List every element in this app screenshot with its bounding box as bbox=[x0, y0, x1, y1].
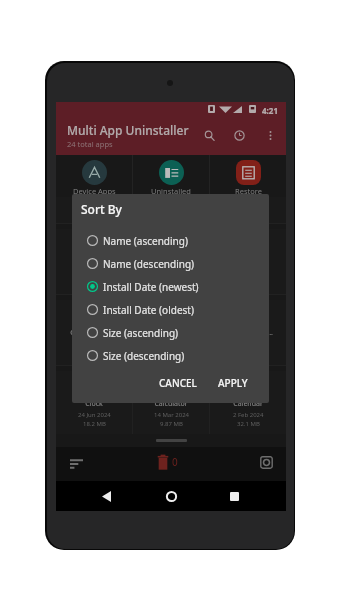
button[interactable]: More options bbox=[260, 125, 280, 145]
staticText: Calculator bbox=[154, 399, 188, 409]
button[interactable]: Device Apps bbox=[56, 155, 132, 197]
button[interactable]: History bbox=[229, 125, 249, 145]
staticText: Install Date (oldest) bbox=[103, 303, 194, 317]
button[interactable]: Chrome bbox=[56, 229, 132, 295]
staticText: Google Optimi... bbox=[144, 328, 198, 338]
staticText: 64.3 MB bbox=[160, 278, 183, 286]
staticText: 212.4 MB bbox=[81, 278, 108, 286]
button[interactable]: Select all bbox=[254, 450, 278, 474]
button[interactable]: Size (ascending) bbox=[72, 321, 269, 344]
staticText: 153.71 MB bbox=[79, 349, 109, 357]
button[interactable]: CANCEL bbox=[153, 372, 203, 394]
staticText: 24 total apps bbox=[67, 139, 113, 149]
staticText: 2 Feb 2024 bbox=[233, 411, 264, 419]
button[interactable]: Calendar bbox=[210, 197, 286, 224]
staticText: Name (ascending) bbox=[103, 234, 188, 248]
staticText: Restore bbox=[235, 186, 262, 196]
button[interactable]: Calculator bbox=[133, 371, 209, 434]
staticText: 18.2 MB bbox=[83, 420, 106, 428]
staticText: Material Icon... bbox=[224, 328, 273, 338]
button[interactable]: Size (descending) bbox=[72, 344, 269, 367]
staticText: 32.1 MB bbox=[237, 420, 260, 428]
staticText: 18.2 MB bbox=[83, 207, 106, 215]
staticText: Install Date (newest) bbox=[103, 280, 199, 294]
button[interactable]: Install Date (oldest) bbox=[72, 298, 269, 321]
button[interactable]: Delete selected bbox=[157, 451, 178, 473]
staticText: CANCEL bbox=[159, 376, 197, 390]
button[interactable]: Search bbox=[199, 125, 219, 145]
staticText: Size (ascending) bbox=[103, 326, 179, 340]
staticText: Uninstalled bbox=[151, 186, 191, 196]
button[interactable]: Sort bbox=[64, 452, 88, 476]
button[interactable]: Clock bbox=[56, 371, 132, 434]
staticText: Sort By bbox=[81, 201, 122, 217]
button[interactable]: Clock bbox=[56, 197, 132, 224]
staticText: 4.17 MB bbox=[160, 349, 183, 357]
button[interactable]: Recents bbox=[222, 484, 246, 508]
button[interactable]: Install Date (newest) bbox=[72, 275, 269, 298]
staticText: Drive bbox=[162, 257, 180, 267]
staticText: Calendar bbox=[233, 399, 263, 409]
staticText: 24 Jun 2024 bbox=[78, 411, 111, 419]
button[interactable]: Drive bbox=[133, 229, 209, 295]
staticText: Device Apps bbox=[73, 186, 116, 196]
button[interactable]: Name (ascending) bbox=[72, 229, 269, 252]
staticText: 4:21 bbox=[262, 105, 278, 116]
button[interactable]: Google Photos bbox=[56, 300, 132, 366]
staticText: 14 Mar 2024 bbox=[154, 411, 189, 419]
staticText: 9.87 MB bbox=[160, 420, 183, 428]
staticText: Google Photos bbox=[70, 328, 119, 338]
button[interactable]: Name (descending) bbox=[72, 252, 269, 275]
button[interactable]: APPLY bbox=[212, 372, 254, 394]
staticText: 0 bbox=[172, 455, 178, 469]
staticText: Multi App Uninstaller bbox=[67, 122, 189, 138]
staticText: Size (descending) bbox=[103, 349, 185, 363]
staticText: APPLY bbox=[218, 376, 248, 390]
button[interactable]: Google Optimi... bbox=[133, 300, 209, 366]
button[interactable]: Home bbox=[159, 484, 183, 508]
staticText: Name (descending) bbox=[103, 257, 195, 271]
button[interactable]: Restore bbox=[210, 155, 286, 197]
button[interactable]: Material Icon... bbox=[210, 300, 286, 366]
staticText: Clock bbox=[85, 399, 103, 409]
button[interactable]: Uninstalled bbox=[133, 155, 209, 197]
button[interactable]: Back bbox=[94, 484, 118, 508]
staticText: 24 Jun 2024 bbox=[78, 198, 111, 206]
staticText: Chrome bbox=[81, 257, 108, 267]
button[interactable]: Gmail bbox=[210, 229, 286, 295]
staticText: 8 Oct 2024 bbox=[156, 269, 187, 277]
button[interactable]: Calendar bbox=[210, 371, 286, 434]
